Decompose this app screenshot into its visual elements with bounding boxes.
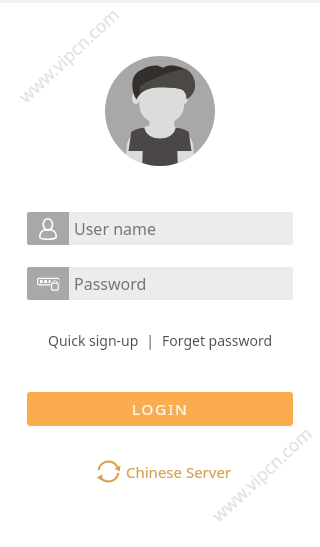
button[interactable]: Switch server [96, 459, 232, 484]
staticText: Password [74, 273, 147, 295]
button[interactable]: Quick sign-up [48, 331, 139, 350]
staticText: Chinese Server [126, 462, 232, 482]
button[interactable]: Password field [27, 267, 293, 300]
button[interactable]: User name field [27, 212, 293, 245]
staticText: Forget password [162, 331, 273, 350]
staticText: www.vipcn.com [206, 421, 317, 527]
staticText: | [139, 331, 162, 350]
staticText: Quick sign-up [48, 331, 139, 350]
staticText: LOGIN [132, 399, 189, 419]
staticText: www.vipcn.com [13, 2, 124, 108]
button[interactable]: Forget password [162, 331, 273, 350]
staticText: User name [74, 218, 157, 240]
button[interactable]: LOGIN [27, 392, 293, 426]
other: Switch server [96, 459, 121, 484]
